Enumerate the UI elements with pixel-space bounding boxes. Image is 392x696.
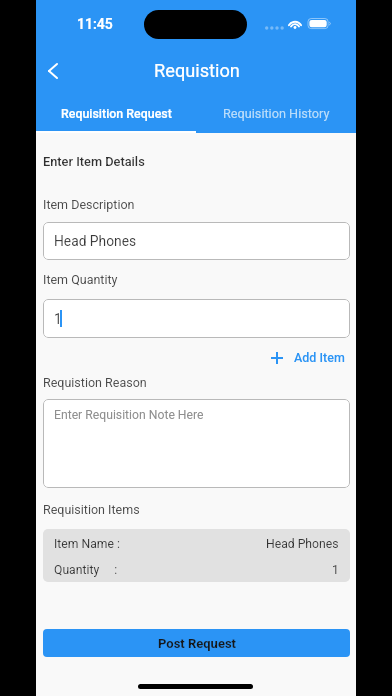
staticText: Quantity : [54, 563, 118, 577]
button[interactable]: 1 [43, 299, 350, 338]
button[interactable]: Post Request [43, 629, 350, 657]
staticText: Item Description [43, 197, 135, 212]
staticText: Item Quantity [43, 272, 118, 287]
staticText: Enter Item Details [43, 154, 145, 169]
staticText: 1 [332, 563, 339, 577]
staticText: Requisition Request [61, 106, 172, 121]
staticText: Post Request [158, 636, 236, 651]
staticText: Item Name : [54, 537, 120, 551]
staticText: 1 [54, 311, 62, 327]
staticText: Head Phones [266, 537, 339, 551]
staticText: Head Phones [54, 233, 137, 249]
button[interactable]: Item Name : [43, 529, 350, 582]
staticText: Enter Requisition Note Here [54, 408, 204, 422]
staticText: 11:45 [77, 16, 113, 32]
staticText: Requisition Items [43, 502, 140, 517]
staticText: Requistion [37, 60, 357, 81]
button[interactable]: Add Item [271, 345, 345, 370]
staticText: Add Item [294, 350, 345, 365]
button[interactable]: Enter Requisition Note Here [43, 399, 350, 488]
button[interactable]: Head Phones [43, 222, 350, 260]
button[interactable]: Requisition History [196, 93, 356, 133]
button[interactable]: Requisition Request [36, 93, 196, 133]
staticText: Requistion Reason [43, 375, 147, 390]
button[interactable]: Back [37, 55, 69, 87]
staticText: Requisition History [223, 106, 330, 121]
